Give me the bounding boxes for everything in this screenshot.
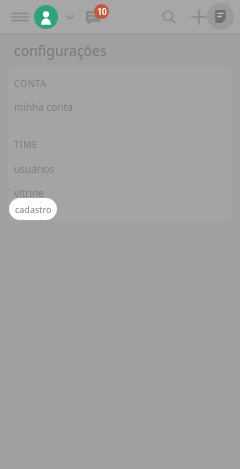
button[interactable]: vitrine: [8, 183, 232, 203]
button[interactable]: minha conta: [8, 97, 232, 117]
staticText: minha conta: [14, 100, 73, 114]
button[interactable]: cadastro: [9, 198, 57, 220]
button[interactable]: Menu: [6, 3, 34, 31]
staticText: cadastro: [15, 203, 52, 215]
button[interactable]: Add: [186, 4, 212, 30]
button[interactable]: Search: [156, 4, 182, 30]
button[interactable]: Messages: [84, 4, 110, 30]
staticText: 10: [97, 6, 107, 17]
staticText: usuários: [14, 162, 55, 176]
staticText: vitrine: [14, 186, 44, 200]
button[interactable]: usuários: [8, 159, 232, 179]
staticText: configurações: [14, 41, 107, 60]
button[interactable]: Expand account: [60, 7, 80, 27]
button[interactable]: Notes: [207, 3, 234, 30]
staticText: CONTA: [14, 77, 47, 89]
staticText: TIME: [14, 138, 38, 150]
button[interactable]: Account: [34, 5, 58, 29]
